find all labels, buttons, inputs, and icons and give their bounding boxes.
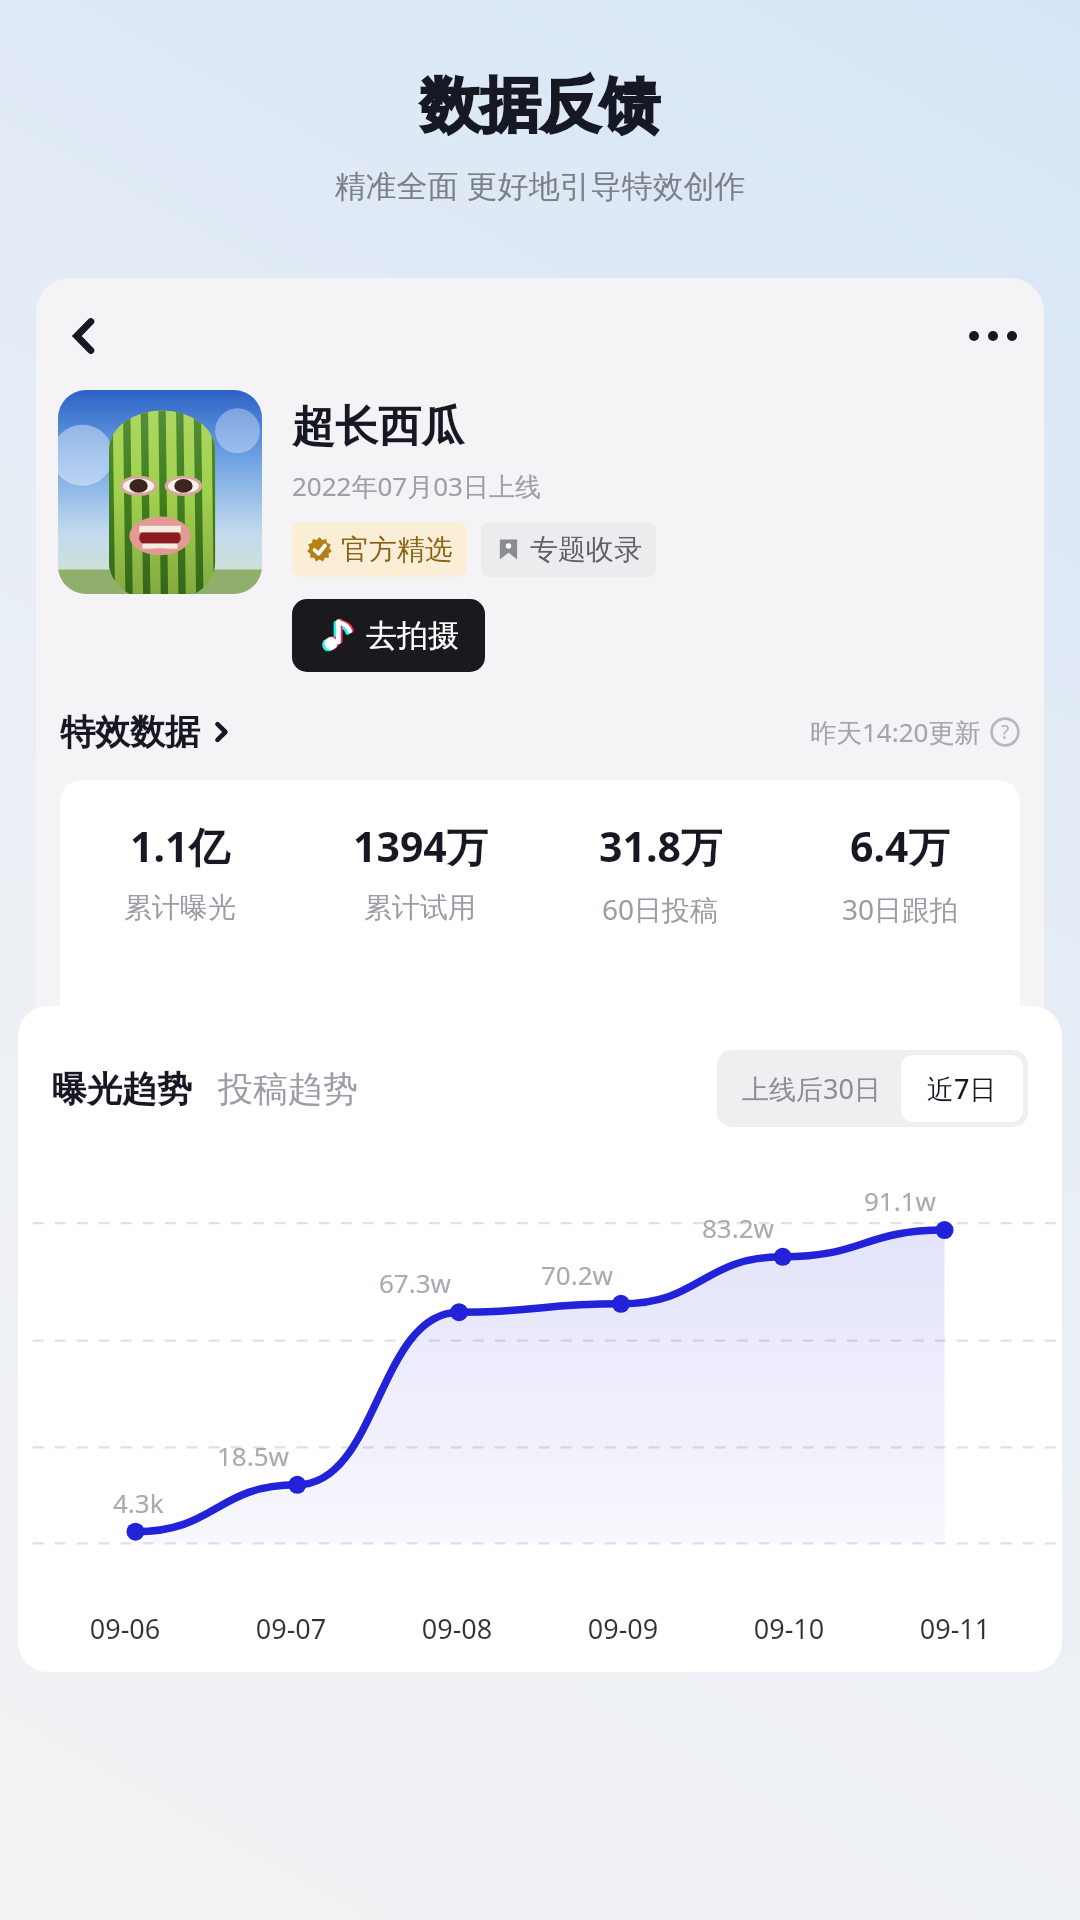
staticText: 专题收录 [530,532,642,567]
staticText: 67.3w [379,1265,452,1300]
staticText: 精准全面 更好地引导特效创作 [0,164,1080,206]
staticText: 近7日 [927,1070,997,1107]
staticText: 31.8万 [599,818,722,874]
staticText: 70.2w [541,1257,614,1292]
button[interactable] [58,390,262,594]
staticText: 特效等级 [126,1509,234,1543]
button[interactable]: 8.00 [781,1442,1020,1543]
staticText: 特效数据 [60,710,200,754]
button[interactable]: 1.1亿 [60,818,300,925]
staticText: 8.00 [862,1442,940,1495]
button[interactable]: 昨天14:20更新 [810,714,1020,750]
button[interactable]: 近7日 [901,1055,1023,1122]
button[interactable]: More options [958,301,1028,371]
button[interactable]: 6.4万 [780,818,1020,928]
staticText: 曝光趋势 [52,1067,192,1111]
button[interactable]: 特效数据 [60,710,232,754]
button[interactable]: Back [50,301,120,371]
staticText: 09-08 [374,1610,540,1647]
button[interactable]: 上线后30日 [722,1055,901,1122]
staticText: 6分 [630,1442,692,1495]
button[interactable]: 曝光趋势 [52,1067,192,1111]
button[interactable]: 去拍摄 [292,599,485,672]
staticText: D [166,1442,195,1495]
button[interactable]: 官方精选 [292,522,467,577]
staticText: 6.4万 [850,818,950,874]
staticText: 累计曝光 [124,890,236,925]
button[interactable]: 69.23 [301,1442,540,1543]
button[interactable]: 专题收录 [481,522,656,577]
button[interactable]: 6分 [541,1442,780,1543]
staticText: 超长西瓜 [292,400,464,454]
button[interactable]: 1394万 [300,818,540,925]
button[interactable]: D [60,1442,300,1543]
staticText: 09-07 [208,1610,374,1647]
staticText: 60日投稿 [602,890,719,928]
staticText: 数据反馈 [0,68,1080,144]
staticText: 09-09 [540,1610,706,1647]
staticText: 30日跟拍 [842,890,959,928]
staticText: 去拍摄 [366,616,459,655]
staticText: 1394万 [353,818,488,874]
staticText: 昨天14:20更新 [810,714,981,750]
staticText: 4.3k [113,1485,164,1520]
staticText: 2022年07月03日上线 [292,468,541,504]
staticText: 18.5w [217,1438,290,1473]
button[interactable]: 31.8万 [540,818,780,928]
staticText: 1.1亿 [130,818,230,874]
staticText: 投稿趋势 [218,1067,358,1111]
staticText: ? [1001,719,1010,745]
staticText: 09-11 [872,1610,1038,1647]
staticText: 91.1w [864,1183,937,1218]
staticText: 累计试用 [364,890,476,925]
staticText: 09-06 [42,1610,208,1647]
button[interactable]: 投稿趋势 [218,1067,358,1111]
staticText: 官方精选 [341,532,453,567]
staticText: 83.2w [702,1210,775,1245]
staticText: 09-10 [706,1610,872,1647]
staticText: 上线后30日 [742,1070,881,1107]
staticText: 69.23 [370,1442,471,1495]
